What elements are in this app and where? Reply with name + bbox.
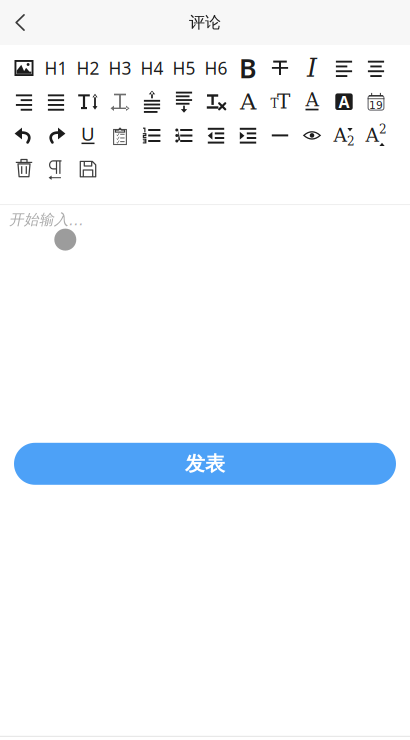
button[interactable]: Bulleted list xyxy=(168,120,200,150)
staticText: T xyxy=(277,90,290,113)
button[interactable]: Align center xyxy=(360,53,392,83)
staticText: H5 xyxy=(172,56,195,79)
button[interactable]: Back xyxy=(6,7,34,37)
button[interactable]: Heading 3 xyxy=(104,53,136,83)
button[interactable]: Indent xyxy=(232,120,264,150)
button[interactable]: Align right xyxy=(8,87,40,117)
staticText: 2 xyxy=(379,122,387,136)
button[interactable]: Heading 1 xyxy=(40,53,72,83)
staticText: A xyxy=(305,89,318,110)
button[interactable]: Subscript xyxy=(328,120,360,150)
button[interactable]: Heading 4 xyxy=(136,53,168,83)
button[interactable]: Numbered list xyxy=(136,120,168,150)
staticText: H2 xyxy=(76,56,99,79)
button[interactable]: Align top xyxy=(136,87,168,117)
button[interactable]: 发表 xyxy=(14,443,396,485)
button[interactable]: Delete xyxy=(8,154,40,184)
button[interactable]: Bold xyxy=(232,53,264,83)
button[interactable]: Heading 6 xyxy=(200,53,232,83)
button[interactable]: Italic xyxy=(296,53,328,83)
button[interactable]: Outdent xyxy=(200,120,232,150)
staticText: H4 xyxy=(140,56,163,79)
staticText: 发表 xyxy=(185,451,225,476)
button[interactable]: Paste xyxy=(104,120,136,150)
button[interactable]: Underline xyxy=(72,120,104,150)
staticText: H6 xyxy=(204,56,227,79)
button[interactable]: Insert image xyxy=(8,53,40,83)
button[interactable]: Justify xyxy=(40,87,72,117)
button[interactable]: Heading 2 xyxy=(72,53,104,83)
staticText: 评论 xyxy=(189,13,221,32)
staticText: A xyxy=(333,124,346,146)
button[interactable]: Save xyxy=(72,154,104,184)
button[interactable]: Clear formatting xyxy=(200,87,232,117)
button[interactable]: Highlight colour xyxy=(328,87,360,117)
button[interactable]: Heading 5 xyxy=(168,53,200,83)
button[interactable]: Insert date xyxy=(360,87,392,117)
staticText: H1 xyxy=(44,56,67,79)
staticText: T xyxy=(270,97,278,111)
button[interactable]: Strikethrough xyxy=(264,53,296,83)
staticText: U xyxy=(81,121,95,146)
button[interactable]: Decrease font size xyxy=(264,87,296,117)
staticText: 开始输入... xyxy=(9,210,84,229)
staticText: A xyxy=(365,124,378,146)
button[interactable]: Align bottom xyxy=(168,87,200,117)
staticText: I xyxy=(307,53,317,83)
button[interactable]: Align left xyxy=(328,53,360,83)
button[interactable]: Text colour xyxy=(296,87,328,117)
button[interactable]: Line height xyxy=(72,87,104,117)
staticText: H3 xyxy=(108,56,131,79)
staticText: A xyxy=(338,91,349,112)
button[interactable]: Superscript xyxy=(360,120,392,150)
staticText: 19 xyxy=(369,99,383,111)
staticText: B xyxy=(239,50,257,86)
button[interactable]: Letter spacing xyxy=(104,87,136,117)
button[interactable]: Increase font size xyxy=(232,87,264,117)
button[interactable]: Preview xyxy=(296,120,328,150)
button[interactable]: Horizontal rule xyxy=(264,120,296,150)
staticText: 2 xyxy=(347,134,355,148)
button[interactable]: Paragraph mark xyxy=(40,154,72,184)
button[interactable]: Undo xyxy=(8,120,40,150)
button[interactable]: Redo xyxy=(40,120,72,150)
staticText: A xyxy=(240,88,256,115)
